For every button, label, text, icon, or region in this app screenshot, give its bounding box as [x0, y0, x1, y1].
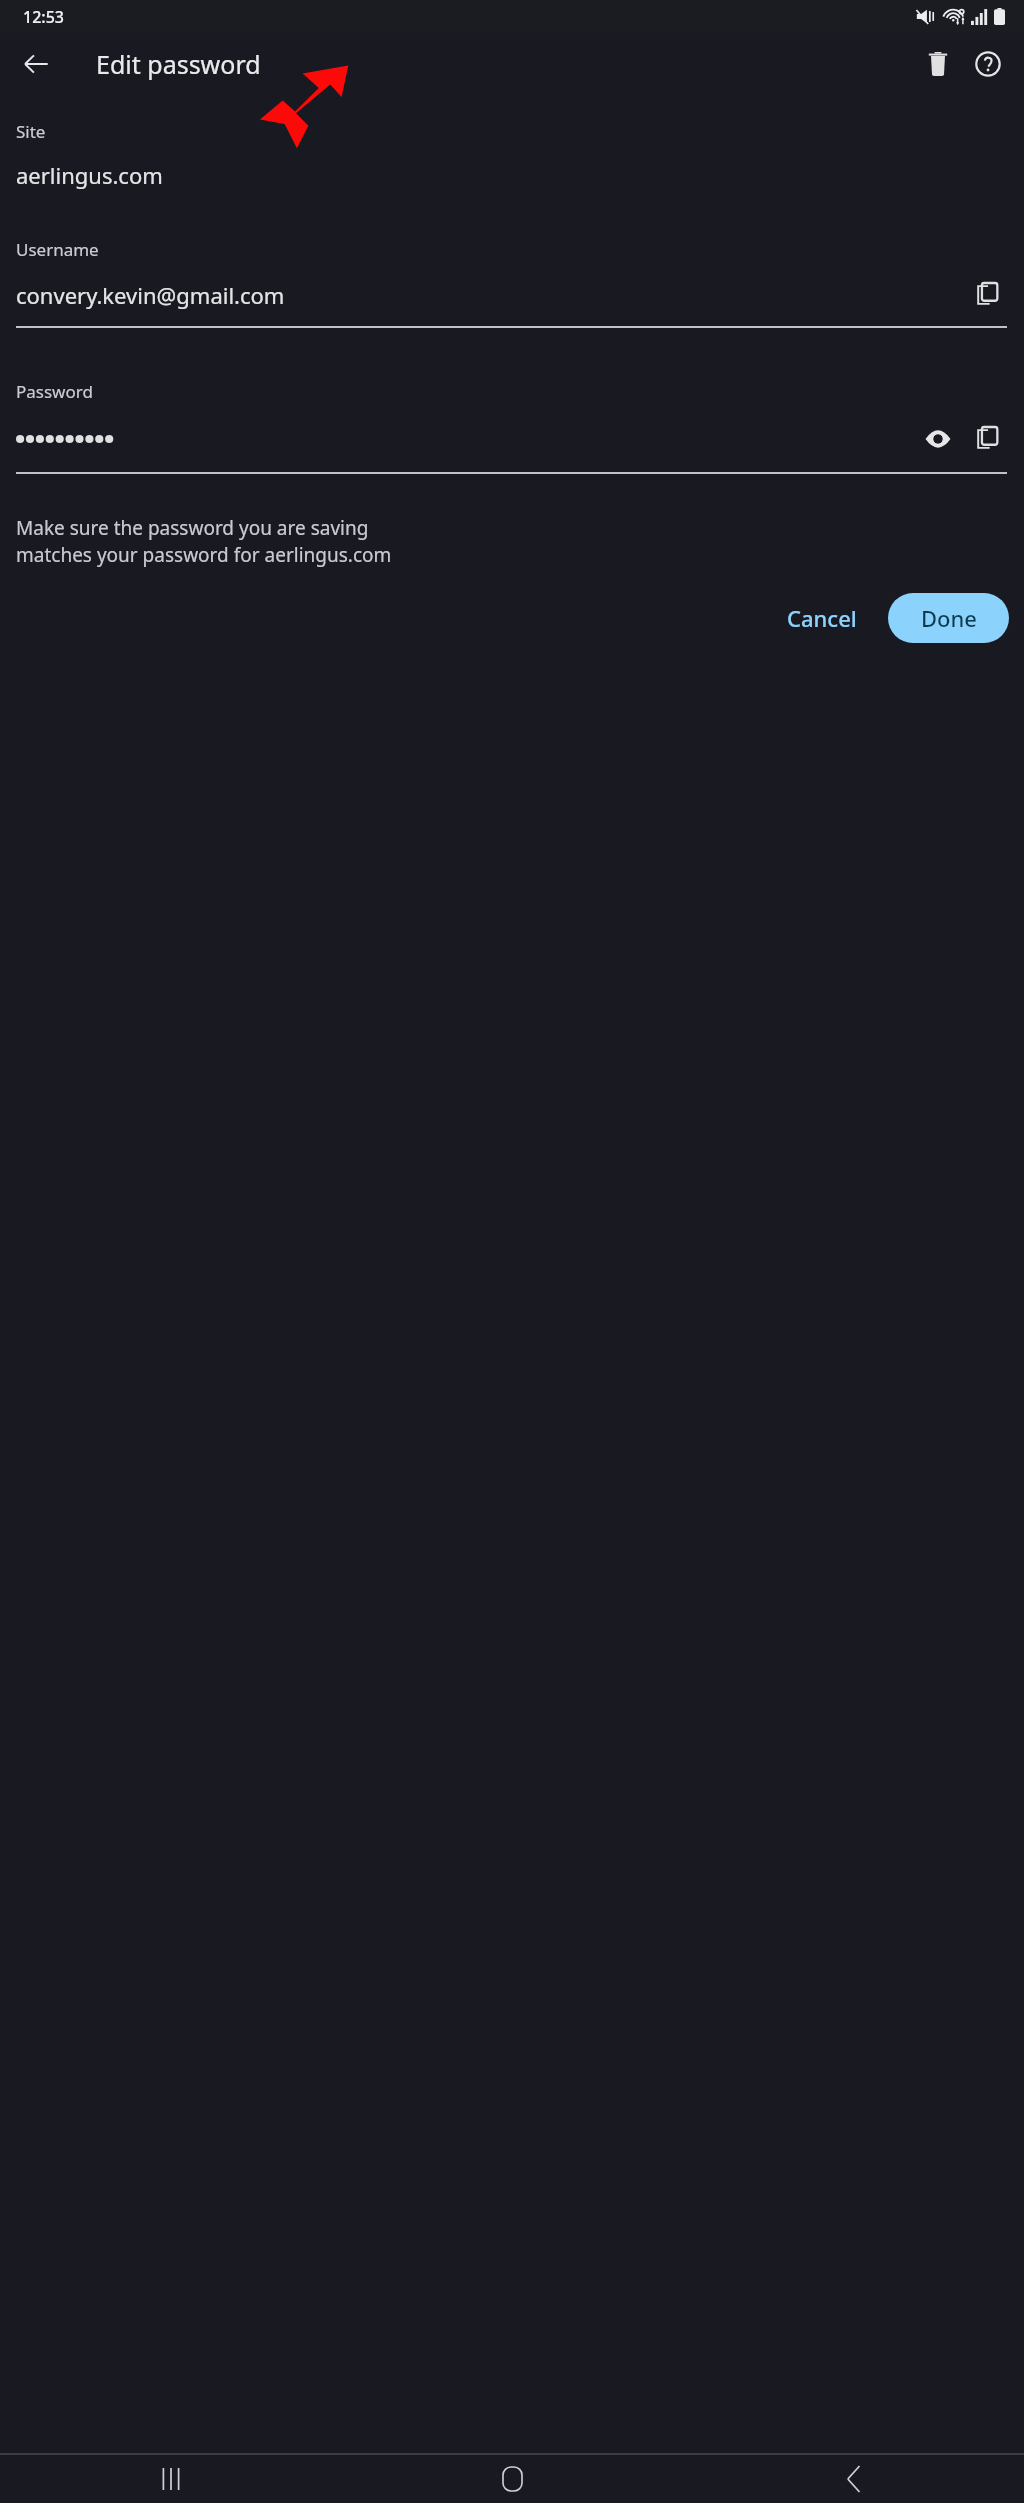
staticText: convery.kevin@gmail.com — [16, 280, 965, 310]
staticText: Username — [16, 238, 99, 261]
button[interactable]: Back — [683, 2455, 1024, 2503]
button[interactable]: Delete password — [914, 40, 962, 88]
button[interactable]: Copy username — [965, 273, 1009, 317]
staticText: aerlingus.com — [16, 160, 163, 190]
button[interactable]: Done — [888, 593, 1009, 643]
staticText: 12:53 — [23, 6, 64, 28]
button[interactable]: Back — [12, 40, 60, 88]
button[interactable]: Copy password — [965, 417, 1009, 461]
button[interactable]: Recent apps — [0, 2455, 342, 2503]
staticText: Password — [16, 380, 93, 403]
staticText: Cancel — [787, 603, 857, 633]
button[interactable]: Home — [342, 2455, 683, 2503]
staticText: Make sure the password you are saving ma… — [16, 515, 392, 568]
button[interactable]: Cancel — [769, 591, 875, 645]
button[interactable]: Help — [964, 40, 1012, 88]
staticText: Edit password — [96, 47, 261, 81]
button[interactable]: Show password — [916, 417, 960, 461]
staticText: Done — [921, 603, 977, 633]
staticText: Site — [16, 120, 46, 143]
